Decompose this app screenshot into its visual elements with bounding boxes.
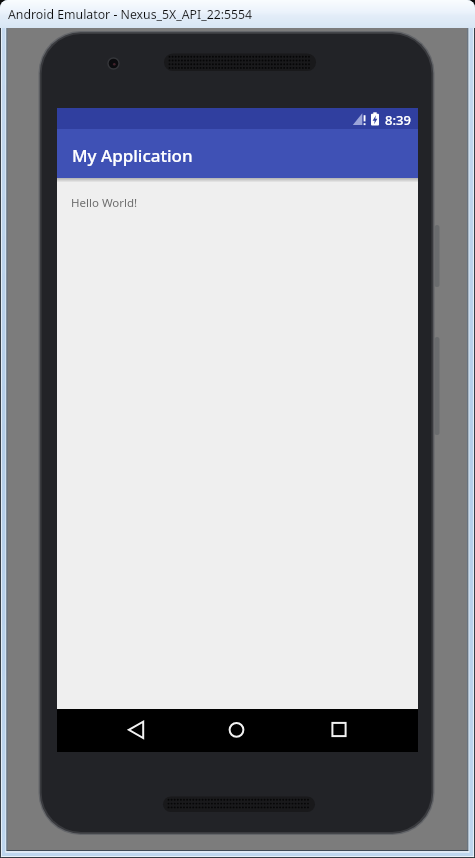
button[interactable] <box>112 709 160 752</box>
staticText: Hello World! <box>71 195 138 211</box>
button[interactable] <box>213 709 261 752</box>
staticText: My Application <box>72 144 193 167</box>
button[interactable] <box>316 709 364 752</box>
staticText: 8:39 <box>385 111 411 129</box>
staticText: Android Emulator - Nexus_5X_API_22:5554 <box>8 6 253 23</box>
